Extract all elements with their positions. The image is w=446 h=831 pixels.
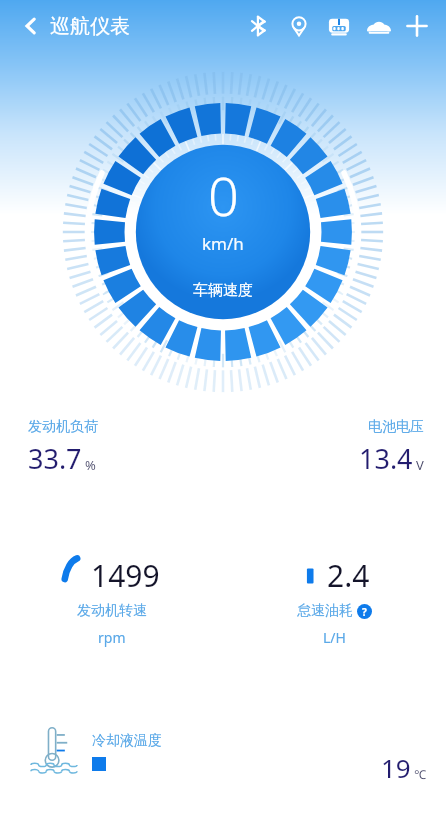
staticText: 电池电压: [368, 418, 424, 436]
staticText: 19: [381, 750, 411, 785]
staticText: V: [416, 456, 424, 474]
button[interactable]: Vehicle: [364, 11, 394, 41]
button[interactable]: Bluetooth: [244, 11, 274, 41]
staticText: 发动机负荷: [28, 418, 98, 436]
button[interactable]: 巡航仪表: [50, 14, 130, 39]
staticText: 冷却液温度: [92, 732, 162, 750]
staticText: 1499: [91, 555, 160, 596]
button[interactable]: Location: [284, 11, 314, 41]
staticText: 13.4: [359, 440, 413, 477]
button[interactable]: 2.4: [223, 555, 446, 647]
staticText: rpm: [98, 628, 126, 647]
staticText: 怠速油耗: [297, 602, 353, 620]
staticText: ?: [362, 605, 367, 619]
button[interactable]: 1499: [0, 555, 223, 647]
staticText: 发动机转速: [77, 602, 147, 620]
button[interactable]: Back: [14, 9, 48, 43]
staticText: 车辆速度: [193, 281, 253, 300]
staticText: km/h: [202, 232, 244, 255]
staticText: ℃: [414, 766, 426, 782]
staticText: 2.4: [327, 555, 370, 596]
staticText: 33.7: [28, 440, 82, 477]
staticText: L/H: [323, 628, 346, 647]
button[interactable]: 冷却液温度: [30, 722, 162, 780]
button[interactable]: OBD device: [324, 11, 354, 41]
staticText: 0: [208, 158, 239, 232]
button[interactable]: 0: [47, 56, 399, 408]
button[interactable]: Add: [402, 11, 432, 41]
staticText: %: [85, 456, 96, 474]
